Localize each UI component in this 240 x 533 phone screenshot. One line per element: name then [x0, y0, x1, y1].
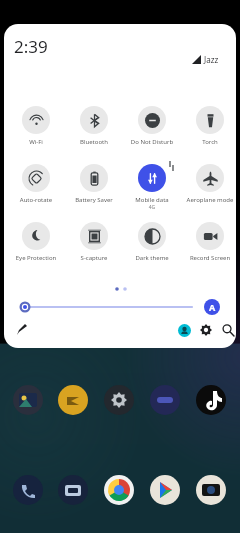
button[interactable]: Aeroplane mode	[184, 164, 236, 210]
staticText: Bluetooth	[68, 138, 120, 146]
button[interactable]: Search	[218, 320, 236, 340]
staticText: Wi-Fi	[10, 138, 62, 146]
staticText: Do Not Disturb	[126, 138, 178, 146]
staticText: Dark theme	[126, 254, 178, 262]
button[interactable]: Eye Protection	[10, 222, 62, 268]
button[interactable]	[18, 296, 224, 318]
staticText: Eye Protection	[10, 254, 62, 262]
button[interactable]: Do Not Disturb	[126, 106, 178, 152]
staticText: 2:39	[14, 35, 48, 58]
button[interactable]: Settings	[196, 320, 216, 340]
button[interactable]: Record Screen	[184, 222, 236, 268]
staticText: S-capture	[68, 254, 120, 262]
button[interactable]: Torch	[184, 106, 236, 152]
staticText: Battery Saver	[68, 196, 120, 204]
staticText: Auto-rotate	[10, 196, 62, 204]
button[interactable]: Auto brightness	[204, 299, 220, 315]
staticText: Jazz	[204, 54, 219, 65]
button[interactable]: Wi-Fi	[10, 106, 62, 152]
staticText: A	[209, 301, 216, 313]
button[interactable]: Edit	[12, 320, 32, 340]
button[interactable]: User	[174, 320, 194, 340]
button[interactable]: Bluetooth	[68, 106, 120, 152]
button[interactable]: S-capture	[68, 222, 120, 268]
button[interactable]: Mobile data	[126, 164, 178, 210]
staticText: Record Screen	[184, 254, 236, 262]
button[interactable]: Auto-rotate	[10, 164, 62, 210]
button[interactable]: Battery Saver	[68, 164, 120, 210]
staticText: 4G	[126, 204, 178, 210]
button[interactable]: Dark theme	[126, 222, 178, 268]
staticText: Mobile data	[126, 196, 178, 204]
staticText: Torch	[184, 138, 236, 146]
staticText: Aeroplane mode	[184, 196, 236, 204]
